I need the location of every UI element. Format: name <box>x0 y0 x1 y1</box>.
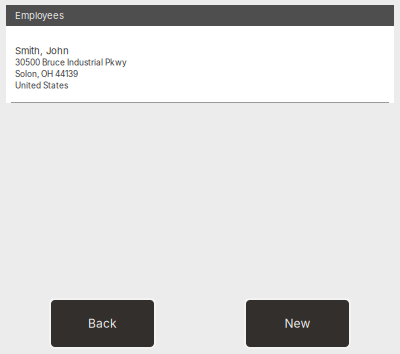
staticText: Solon, OH 44139 <box>15 69 78 79</box>
button[interactable]: New <box>246 300 349 347</box>
button[interactable]: Back <box>51 300 154 347</box>
staticText: Smith, John <box>15 45 69 57</box>
staticText: New <box>284 316 310 331</box>
staticText: 30500 Bruce Industrial Pkwy <box>15 57 127 67</box>
staticText: United States <box>15 81 68 91</box>
button[interactable]: Smith, John <box>6 26 394 103</box>
staticText: Back <box>88 316 117 331</box>
staticText: Employees <box>15 10 64 21</box>
